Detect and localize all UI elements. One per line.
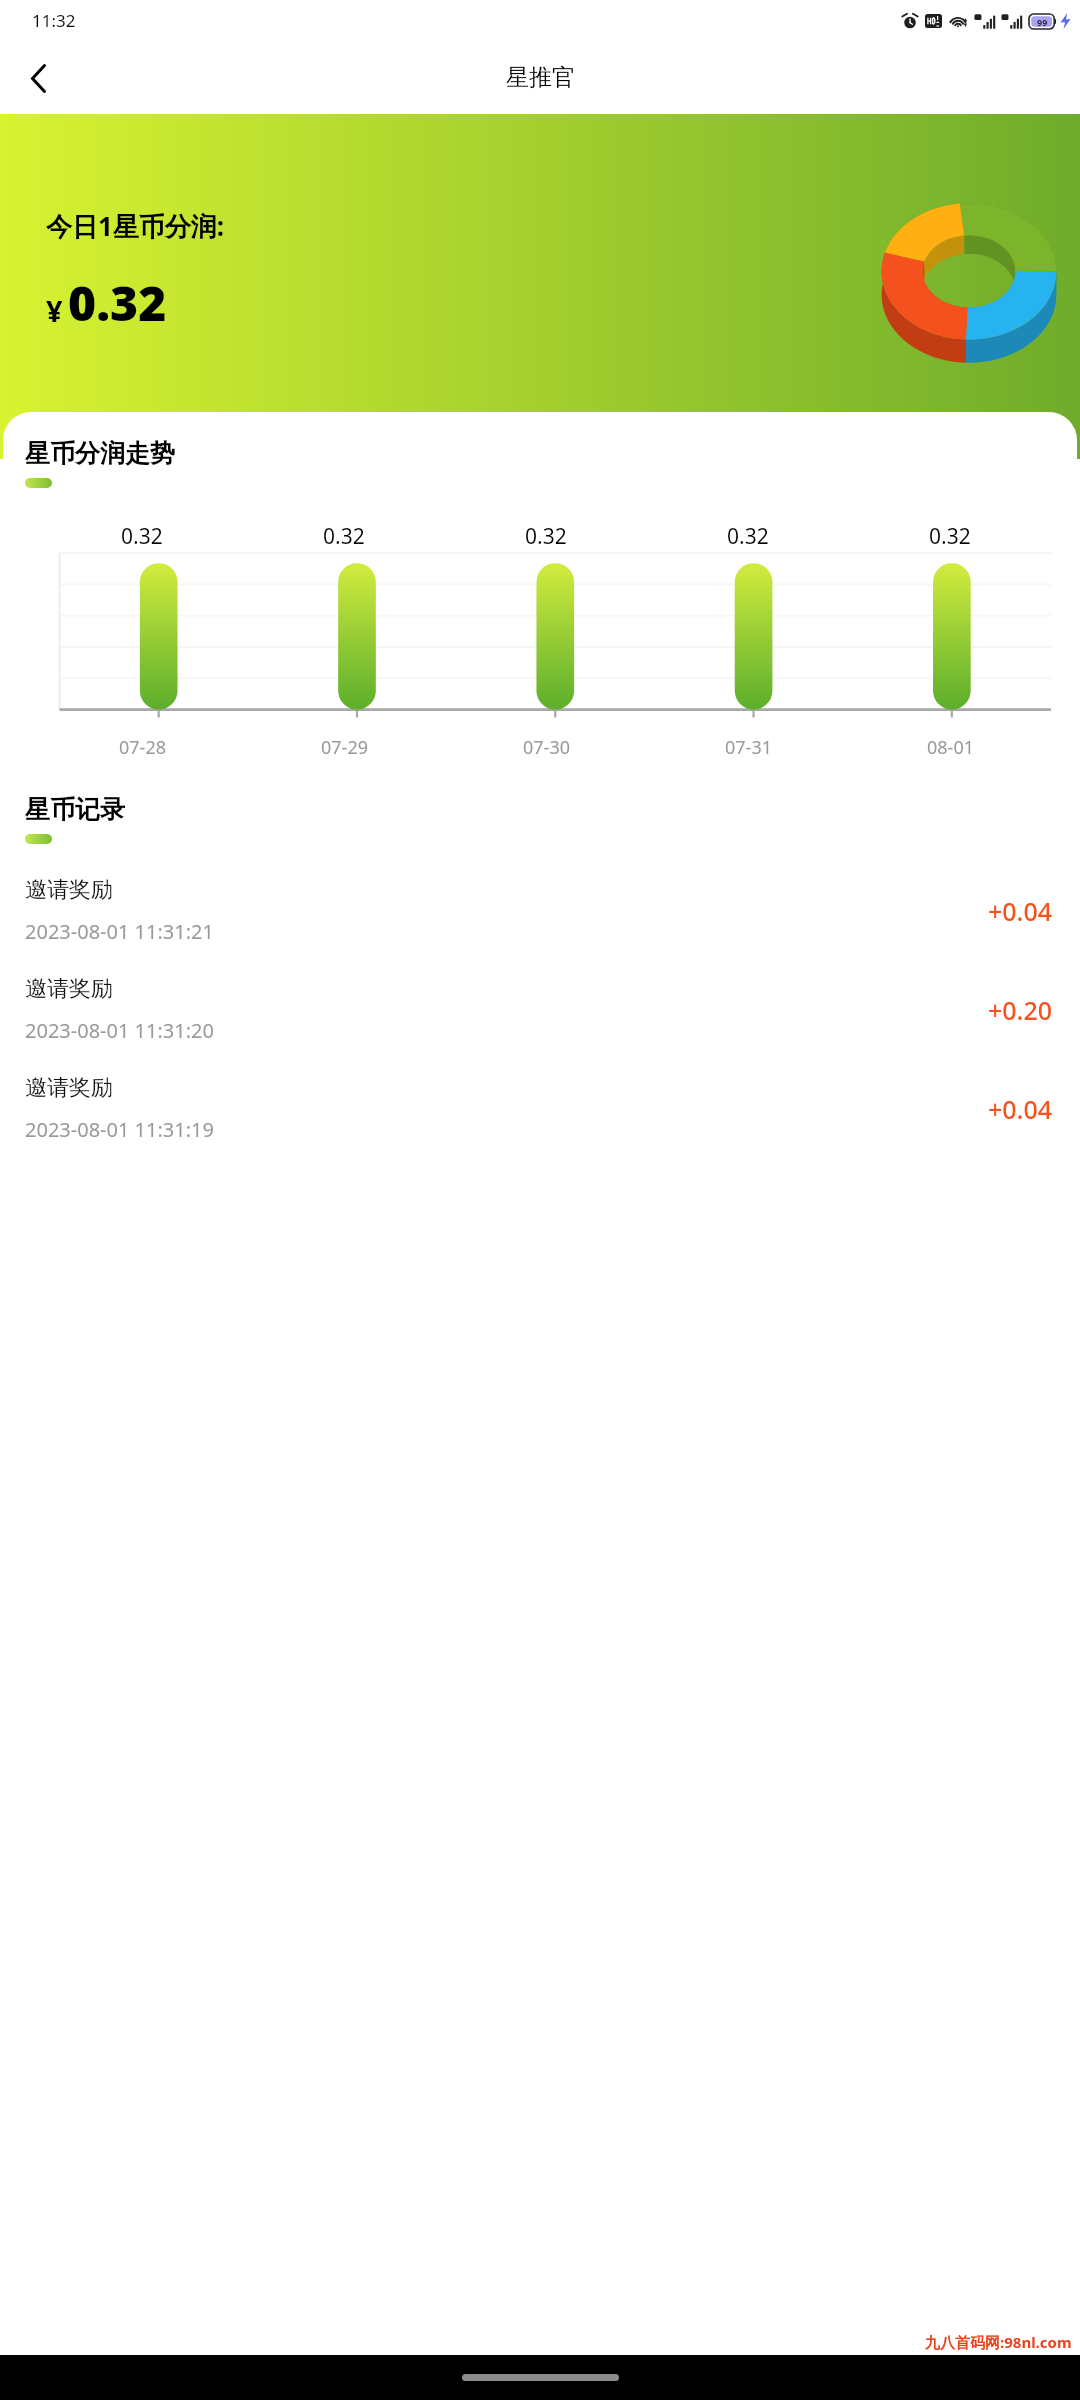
staticText: 邀请奖励 xyxy=(25,975,113,1003)
staticText: 07-29 xyxy=(321,735,368,760)
staticText: ¥ xyxy=(46,291,63,330)
staticText: 0.32 xyxy=(727,522,769,551)
button[interactable]: 邀请奖励 xyxy=(3,969,1077,1050)
staticText: 邀请奖励 xyxy=(25,876,113,904)
staticText: 0.32 xyxy=(929,522,971,551)
staticText: 07-31 xyxy=(725,735,772,760)
staticText: 星币分润走势 xyxy=(25,438,175,469)
staticText: 2023-08-01 11:31:20 xyxy=(25,1017,214,1044)
staticText: +0.20 xyxy=(988,993,1053,1027)
button[interactable]: 邀请奖励 xyxy=(3,870,1077,951)
staticText: 今日1星币分润: xyxy=(46,208,225,244)
button[interactable]: Back xyxy=(10,50,66,106)
staticText: 邀请奖励 xyxy=(25,1074,113,1102)
staticText: 99 xyxy=(1037,16,1048,28)
staticText: 星币记录 xyxy=(25,794,125,825)
staticText: 0.32 xyxy=(68,270,167,335)
staticText: 07-28 xyxy=(119,735,166,760)
staticText: 08-01 xyxy=(927,735,974,760)
staticText: 星推官 xyxy=(506,63,575,92)
staticText: +0.04 xyxy=(988,894,1053,928)
staticText: 0.32 xyxy=(323,522,365,551)
staticText: 07-30 xyxy=(523,735,570,760)
button[interactable]: 邀请奖励 xyxy=(3,1068,1077,1149)
staticText: +0.04 xyxy=(988,1092,1053,1126)
staticText: 0.32 xyxy=(121,522,163,551)
staticText: 0.32 xyxy=(525,522,567,551)
staticText: 2023-08-01 11:31:19 xyxy=(25,1116,214,1143)
staticText: 2023-08-01 11:31:21 xyxy=(25,918,214,945)
staticText: 九八首码网:98nl.com xyxy=(925,2332,1072,2352)
staticText: 11:32 xyxy=(32,9,76,32)
